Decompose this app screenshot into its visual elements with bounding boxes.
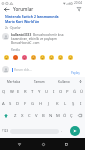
button[interactable]: Merhaba <box>1 78 27 85</box>
staticText: Yorum ekle... <box>14 68 32 72</box>
button[interactable]: K <box>53 99 61 108</box>
button[interactable]: C <box>26 111 33 120</box>
button[interactable]: Ç <box>68 111 75 120</box>
button[interactable]: O <box>57 87 64 96</box>
button[interactable]: T <box>29 87 36 96</box>
staticText: Merhaba <box>7 80 21 84</box>
staticText: 20:04 <box>74 1 83 5</box>
button[interactable]: Paylaş <box>70 71 81 75</box>
staticText: S <box>9 101 12 107</box>
button[interactable]: R <box>22 87 29 96</box>
staticText: I <box>53 89 55 95</box>
staticText: B <box>42 113 45 119</box>
button[interactable]: Emoji reaction <box>29 53 37 61</box>
button[interactable]: Emoji reaction <box>2 53 10 61</box>
button[interactable]: W <box>8 87 15 96</box>
button[interactable]: Tamam <box>27 78 52 85</box>
staticText: X <box>21 113 24 119</box>
staticText: kazandıran, etkinlik ve paylaşım <box>11 37 58 41</box>
staticText: Yorumlar <box>13 6 34 12</box>
staticText: D <box>16 101 20 107</box>
button[interactable]: Ö <box>61 111 68 120</box>
button[interactable]: Q <box>0 87 8 96</box>
staticText: J <box>48 101 50 107</box>
button[interactable]: Back <box>14 139 24 149</box>
button[interactable]: Kullanıcı <box>52 78 77 85</box>
staticText: L <box>64 101 67 107</box>
button[interactable]: I <box>77 99 85 108</box>
button[interactable]: Recents <box>61 139 71 149</box>
staticText: M <box>56 113 60 119</box>
button[interactable]: G <box>29 99 37 108</box>
staticText: V <box>35 113 38 119</box>
button[interactable]: Ğ <box>71 87 78 96</box>
staticText: I <box>80 101 82 107</box>
staticText: Tamam <box>34 80 45 84</box>
staticText: Nintendo Switch 2 lansmanında <box>5 14 59 19</box>
staticText: P <box>66 89 69 95</box>
staticText: Yanıtla <box>11 48 20 52</box>
staticText: Bonushoochen’e kısa <box>33 33 64 37</box>
button[interactable]: M <box>54 111 61 120</box>
button[interactable]: B <box>40 111 47 120</box>
button[interactable]: I <box>50 87 57 96</box>
button[interactable]: Yorum ekle... <box>12 66 82 73</box>
button[interactable]: Ü <box>78 87 85 96</box>
staticText: Kullanıcı <box>58 80 71 84</box>
button[interactable]: Emoji reaction <box>56 53 64 61</box>
button[interactable]: H <box>37 99 45 108</box>
button[interactable]: Voice input <box>77 78 84 85</box>
button[interactable]: Y <box>36 87 43 96</box>
button[interactable]: U <box>43 87 50 96</box>
button[interactable]: A <box>0 99 7 108</box>
staticText: Z <box>14 113 17 119</box>
staticText: H <box>39 101 43 107</box>
staticText: Mario Kart World'ün <box>5 19 40 24</box>
button[interactable]: F <box>21 99 29 108</box>
button[interactable]: P <box>64 87 71 96</box>
staticText: N <box>49 113 53 119</box>
button[interactable]: Z <box>11 111 19 120</box>
button[interactable]: E <box>15 87 22 96</box>
button[interactable]: Home <box>38 139 48 149</box>
staticText: A <box>2 101 5 107</box>
button[interactable]: Back <box>2 5 11 13</box>
button[interactable]: L <box>61 99 69 108</box>
staticText: BonusHoostıC .com <box>11 41 40 45</box>
button[interactable]: Backspace <box>75 111 85 120</box>
button[interactable]: X <box>19 111 26 120</box>
button[interactable]: Emoji reaction <box>47 53 55 61</box>
staticText: T <box>31 89 34 95</box>
staticText: O <box>59 89 63 95</box>
button[interactable]: Emoji reaction <box>38 53 46 61</box>
button[interactable]: Shift <box>0 111 11 120</box>
staticText: kullanici3333 <box>11 33 32 37</box>
button[interactable]: . <box>59 125 65 137</box>
button[interactable]: Filter <box>74 5 83 13</box>
staticText: Ş <box>72 101 75 107</box>
button[interactable]: Ş <box>69 99 77 108</box>
staticText: Ğ <box>73 89 77 95</box>
staticText: U <box>45 89 49 95</box>
button[interactable]: N <box>47 111 54 120</box>
button[interactable]: ?123 <box>0 125 10 137</box>
button[interactable]: Emoji reaction <box>66 53 74 61</box>
button[interactable]: V <box>33 111 40 120</box>
staticText: G <box>31 101 35 107</box>
button[interactable]: Emoji reaction <box>11 53 19 61</box>
button[interactable]: S <box>7 99 14 108</box>
staticText: Y <box>38 89 41 95</box>
staticText: . <box>61 128 63 134</box>
button[interactable]: D <box>14 99 21 108</box>
staticText: Ö <box>63 113 67 119</box>
button[interactable]: Emoji reaction <box>20 53 28 61</box>
staticText: R <box>24 89 27 95</box>
staticText: C <box>28 113 31 119</box>
button[interactable]: J <box>45 99 53 108</box>
staticText: 2s · Oyunlar <box>5 26 21 30</box>
staticText: Q <box>2 89 6 95</box>
button[interactable]: Send <box>70 126 80 136</box>
staticText: Paylaş <box>71 71 80 75</box>
staticText: W <box>10 89 14 95</box>
